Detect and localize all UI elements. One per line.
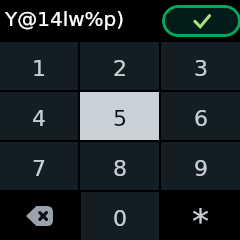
staticText: 7: [32, 156, 46, 182]
staticText: 5: [113, 106, 127, 132]
button[interactable]: 1: [0, 42, 78, 90]
button[interactable]: 5: [80, 92, 159, 140]
staticText: 3: [194, 56, 208, 82]
staticText: 0: [113, 206, 127, 232]
button[interactable]: 8: [80, 142, 159, 190]
staticText: 8: [113, 156, 127, 182]
button[interactable]: 3: [161, 42, 240, 90]
button[interactable]: 7: [0, 142, 78, 190]
button[interactable]: 6: [161, 92, 240, 140]
button[interactable]: Confirm password: [162, 5, 240, 37]
button[interactable]: 2: [80, 42, 159, 90]
staticText: 1: [32, 56, 46, 82]
button[interactable]: 0: [81, 192, 159, 240]
button[interactable]: 9: [161, 142, 240, 190]
staticText: 2: [113, 56, 127, 82]
staticText: 4: [32, 106, 46, 132]
staticText: *: [192, 201, 209, 240]
staticText: Y@14lw%p): [5, 7, 125, 30]
staticText: 9: [194, 156, 208, 182]
button[interactable]: Backspace: [0, 192, 79, 240]
button[interactable]: *: [161, 192, 240, 240]
button[interactable]: 4: [0, 92, 78, 140]
staticText: 6: [194, 106, 208, 132]
